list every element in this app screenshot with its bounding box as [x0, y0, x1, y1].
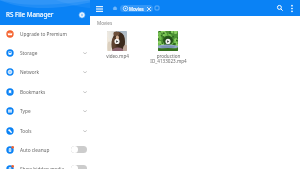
staticText: Bookmarks	[20, 89, 46, 95]
staticText: Show hidden media	[20, 166, 65, 169]
button[interactable]: Auto cleanup switch	[71, 146, 87, 153]
staticText: Tools	[20, 128, 32, 134]
button[interactable]: Settings	[77, 10, 87, 20]
staticText: Movies	[129, 6, 144, 12]
button[interactable]: Type	[0, 102, 90, 121]
button[interactable]: Show hidden media	[0, 160, 90, 169]
staticText: Network	[20, 69, 40, 75]
staticText: video.mp4	[106, 53, 129, 59]
staticText: Type	[20, 108, 31, 114]
button[interactable]: Upgrade to Premium	[0, 25, 90, 44]
button[interactable]: production ID_4133023.mp4	[148, 31, 188, 65]
button[interactable]: More options	[286, 2, 298, 14]
button[interactable]: Movies	[120, 5, 153, 12]
button[interactable]: Open navigation drawer	[93, 2, 106, 15]
button[interactable]: Storage	[0, 44, 90, 63]
button[interactable]: Bookmarks	[0, 83, 90, 102]
staticText: Auto cleanup	[20, 147, 50, 153]
button[interactable]: Show hidden media switch	[71, 165, 87, 169]
button[interactable]: video.mp4	[97, 31, 137, 59]
button[interactable]: Auto cleanup	[0, 141, 90, 160]
button[interactable]: Home	[112, 5, 118, 11]
button[interactable]: Tools	[0, 122, 90, 141]
button[interactable]: Network	[0, 63, 90, 82]
staticText: Upgrade to Premium	[20, 31, 67, 37]
button[interactable]: Search	[274, 2, 286, 14]
staticText: production ID_4133023.mp4	[150, 53, 187, 65]
staticText: Movies	[97, 20, 113, 26]
staticText: RS File Manager	[6, 10, 54, 19]
staticText: Storage	[20, 50, 38, 56]
